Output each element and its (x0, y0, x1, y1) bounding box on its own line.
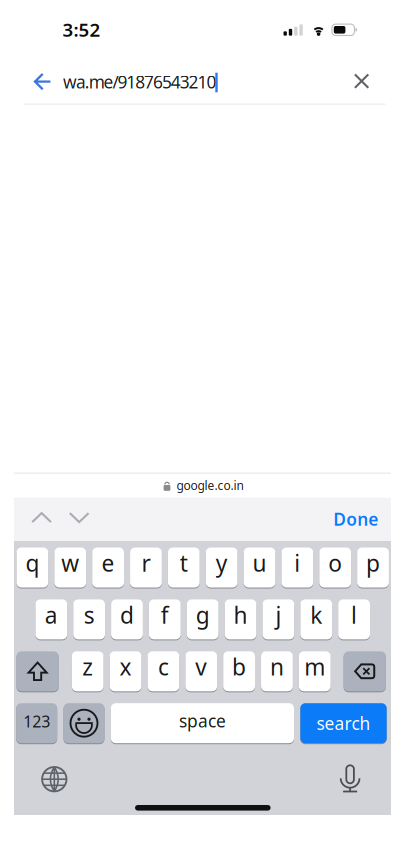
staticText: l (351, 600, 357, 630)
staticText: d (120, 600, 134, 630)
button[interactable]: search (300, 703, 387, 743)
staticText: w (61, 548, 79, 578)
button[interactable]: 123 (16, 703, 57, 743)
staticText: Done (333, 507, 378, 530)
button[interactable]: space (111, 703, 294, 743)
button[interactable]: e (92, 547, 124, 587)
button[interactable]: Done (329, 503, 382, 534)
button[interactable]: f (149, 599, 181, 639)
staticText: e (102, 548, 115, 578)
button[interactable]: Dictate (330, 758, 370, 799)
button[interactable]: w (54, 547, 86, 587)
staticText: google.co.in (177, 477, 244, 493)
button[interactable]: p (357, 547, 389, 587)
button[interactable]: k (300, 599, 332, 639)
staticText: z (82, 652, 93, 682)
staticText: x (120, 652, 132, 682)
staticText: q (25, 548, 39, 578)
button[interactable]: j (262, 599, 294, 639)
staticText: f (161, 600, 169, 630)
button[interactable]: z (72, 651, 104, 691)
button[interactable]: Clear text (346, 66, 377, 96)
button[interactable]: s (73, 599, 105, 639)
button[interactable]: l (338, 599, 370, 639)
button[interactable]: Delete (344, 651, 386, 691)
staticText: c (158, 652, 169, 682)
button[interactable]: m (299, 651, 331, 691)
staticText: search (316, 712, 370, 735)
staticText: 3:52 (62, 17, 100, 42)
button[interactable]: o (319, 547, 351, 587)
staticText: o (328, 548, 342, 578)
staticText: j (275, 600, 281, 630)
button[interactable]: Back (32, 71, 54, 92)
button[interactable]: x (110, 651, 141, 691)
staticText: n (270, 652, 284, 682)
staticText: v (195, 652, 207, 682)
button[interactable]: u (244, 547, 275, 587)
button[interactable]: g (187, 599, 219, 639)
button[interactable]: c (147, 651, 179, 691)
staticText: a (45, 600, 58, 630)
button[interactable]: t (168, 547, 200, 587)
button[interactable]: Next keyboard (35, 760, 73, 798)
staticText: r (141, 548, 150, 578)
staticText: i (294, 548, 300, 578)
button[interactable]: r (130, 547, 162, 587)
button[interactable]: n (261, 651, 293, 691)
staticText: space (179, 709, 226, 732)
staticText: t (180, 548, 188, 578)
button[interactable]: q (16, 547, 48, 587)
staticText: 123 (23, 711, 50, 732)
button[interactable]: Emoji (63, 703, 104, 743)
button[interactable]: a (35, 599, 67, 639)
staticText: g (196, 600, 210, 630)
button[interactable]: d (111, 599, 143, 639)
staticText: p (366, 548, 380, 578)
staticText: u (252, 548, 266, 578)
button[interactable]: b (223, 651, 255, 691)
staticText: s (84, 600, 95, 630)
button[interactable]: Next field (63, 506, 96, 529)
button[interactable]: Shift (16, 651, 59, 691)
button[interactable]: v (185, 651, 217, 691)
button[interactable]: Previous field (25, 506, 58, 529)
staticText: wa.me/91876543210 (63, 70, 216, 93)
button[interactable]: y (206, 547, 238, 587)
staticText: k (310, 600, 322, 630)
staticText: h (234, 600, 248, 630)
staticText: m (304, 652, 325, 682)
staticText: b (232, 652, 246, 682)
staticText: y (216, 548, 228, 578)
button[interactable]: h (225, 599, 256, 639)
button[interactable]: i (281, 547, 313, 587)
